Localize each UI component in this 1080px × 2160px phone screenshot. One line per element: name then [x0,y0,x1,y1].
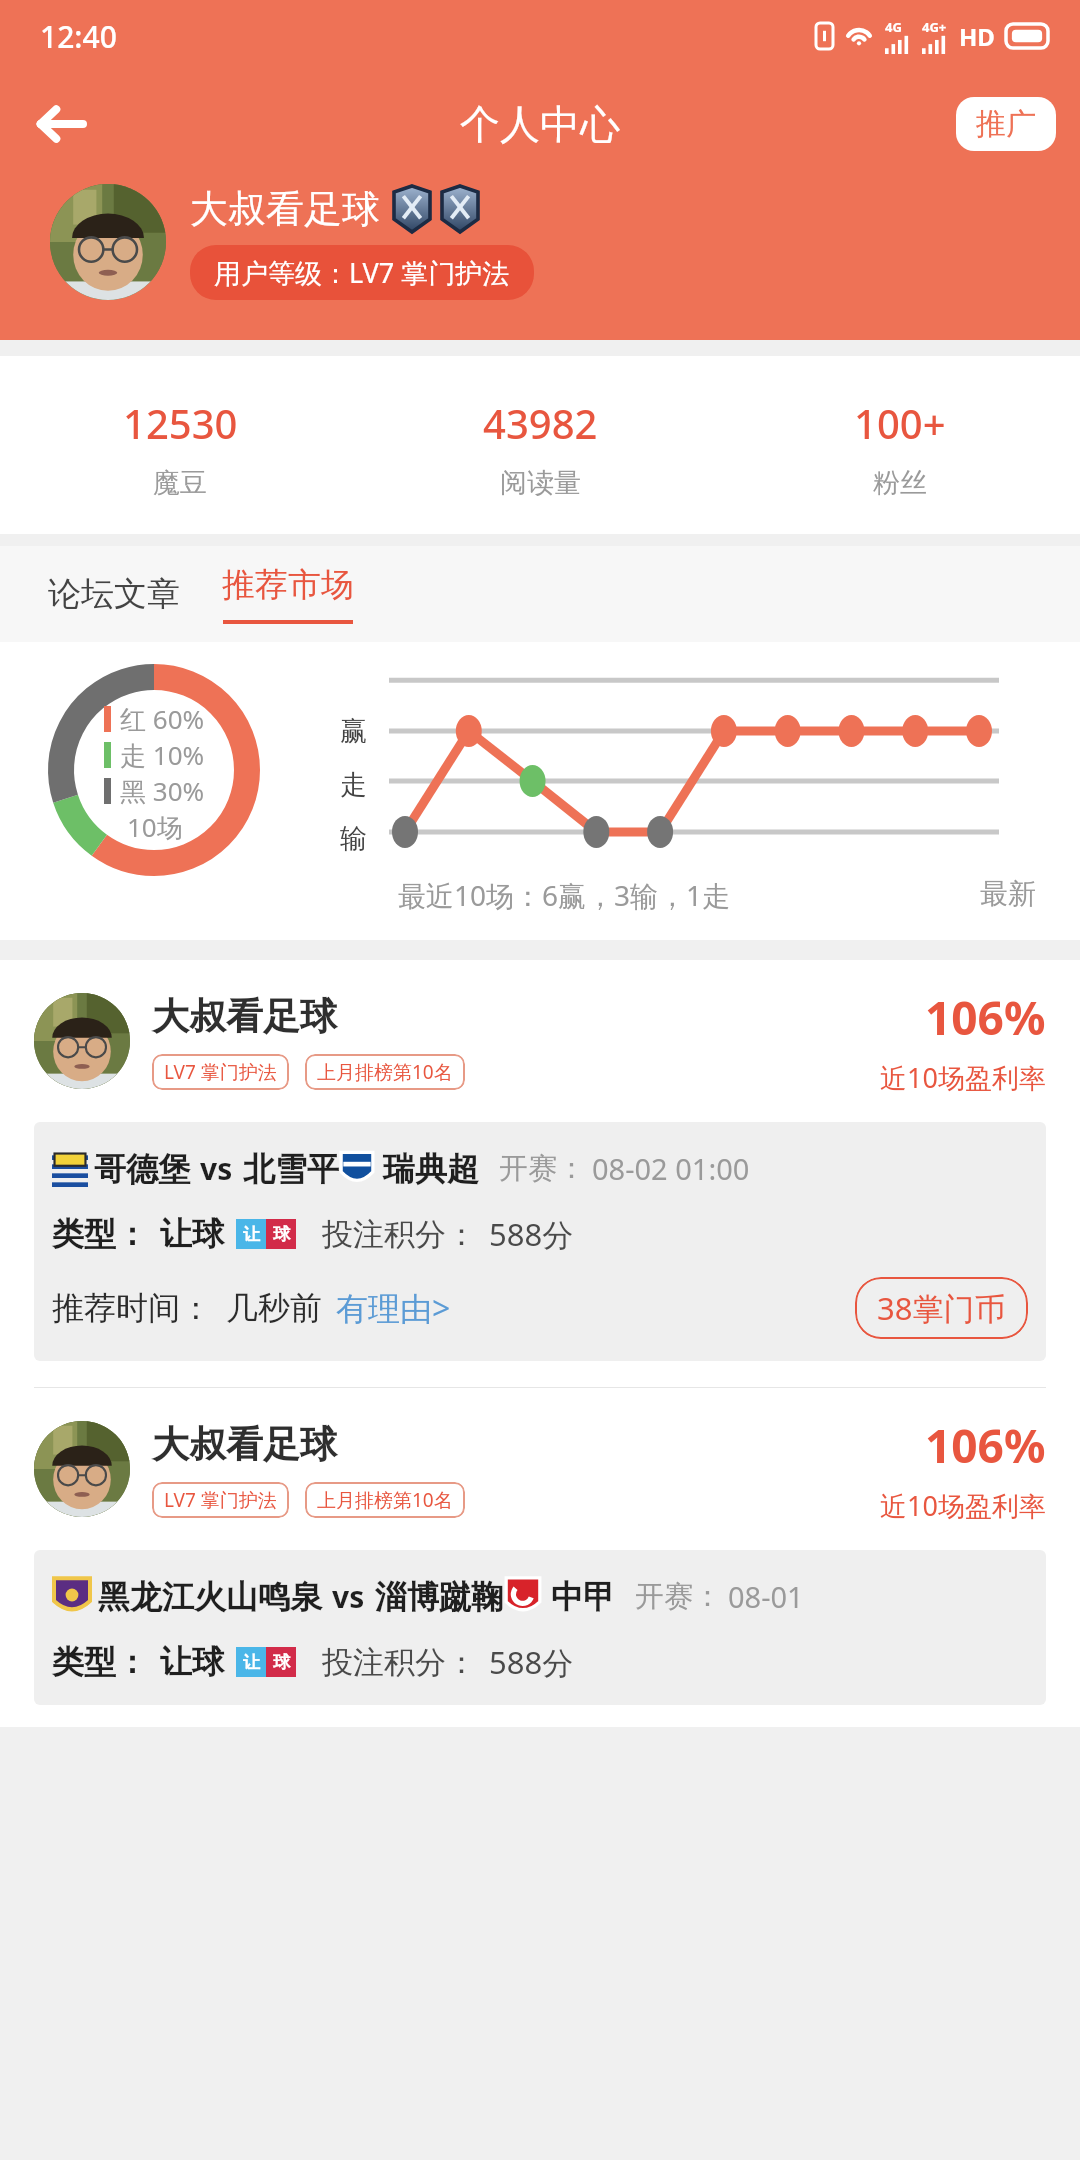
staticText: 瑞典超 [383,1149,479,1189]
staticText: 100+ [854,396,946,450]
staticText: 近10场盈利率 [880,1059,1046,1096]
staticText: 588分 [489,1641,574,1683]
staticText: 大叔看足球 [152,1421,337,1468]
staticText: 上月排榜第10名 [317,1487,453,1513]
staticText: 让 [243,1652,260,1673]
button[interactable]: 43982 [360,396,720,500]
staticText: 让球 [160,1642,224,1682]
staticText: 推荐时间： [52,1288,212,1328]
staticText: 淄博蹴鞠 [375,1577,503,1617]
staticText: 红 60% [120,701,205,737]
staticText: 论坛文章 [48,573,180,615]
staticText: 赢 [340,714,367,748]
staticText: 最近10场：6赢，3输，1走 [398,876,731,914]
staticText: 走 [340,768,367,802]
staticText: 08-01 [728,1577,804,1616]
staticText: 用户等级：LV7 掌门护法 [214,254,510,291]
staticText: 开赛： [499,1150,586,1187]
staticText: 大叔看足球 [190,185,380,233]
staticText: LV7 掌门护法 [164,1059,277,1085]
button[interactable]: 用户等级：LV7 掌门护法 [190,245,534,300]
button[interactable]: 推广 [956,97,1056,151]
button[interactable]: Back [24,88,96,160]
staticText: 黑 30% [120,773,205,809]
staticText: 有理由> [336,1286,451,1330]
staticText: 43982 [483,396,598,450]
staticText: 38掌门币 [877,1287,1006,1329]
staticText: 最新 [980,876,1036,911]
staticText: 4G+ [922,18,947,36]
staticText: 北雪平 [243,1149,339,1189]
button[interactable]: 大叔看足球 [0,960,1080,1387]
button[interactable]: 推荐市场 [218,564,358,624]
staticText: 魔豆 [153,466,207,500]
staticText: 球 [273,1652,290,1673]
staticText: LV7 掌门护法 [164,1487,277,1513]
staticText: 类型： [52,1214,148,1254]
staticText: 开赛： [635,1578,722,1615]
staticText: 10场 [127,809,183,845]
staticText: 走 10% [120,737,205,773]
button[interactable]: 12530 [0,396,360,500]
button[interactable]: 上月排榜第10名 [305,1482,465,1518]
button[interactable]: 100+ [720,396,1080,500]
button[interactable]: 大叔看足球 [0,1387,1080,1727]
staticText: 投注积分： [322,1643,477,1682]
staticText: 上月排榜第10名 [317,1059,453,1085]
button[interactable]: LV7 掌门护法 [152,1482,289,1518]
staticText: 投注积分： [322,1215,477,1254]
staticText: vs [200,1148,233,1189]
staticText: 4G [885,18,902,36]
staticText: 推荐市场 [222,564,354,606]
staticText: 12530 [123,396,238,450]
staticText: 106% [925,1414,1046,1477]
button[interactable]: LV7 掌门护法 [152,1054,289,1090]
staticText: HD [959,20,995,53]
staticText: 黑龙江火山鸣泉 [98,1577,322,1617]
staticText: 让球 [160,1214,224,1254]
button[interactable]: 上月排榜第10名 [305,1054,465,1090]
staticText: 输 [340,822,367,856]
button[interactable]: 论坛文章 [44,555,184,633]
staticText: 哥德堡 [94,1149,190,1189]
staticText: 12:40 [40,16,117,57]
staticText: 08-02 01:00 [592,1149,750,1188]
button[interactable]: 38掌门币 [855,1277,1028,1339]
staticText: 让 [243,1224,260,1245]
button[interactable]: 有理由> [336,1286,451,1330]
staticText: vs [332,1576,365,1617]
staticText: 106% [925,986,1046,1049]
staticText: 阅读量 [500,466,581,500]
staticText: 推广 [976,105,1036,143]
staticText: 几秒前 [226,1288,322,1328]
staticText: 个人中心 [460,99,620,149]
staticText: 粉丝 [873,466,927,500]
staticText: 中甲 [551,1577,615,1617]
staticText: 588分 [489,1213,574,1255]
staticText: 大叔看足球 [152,993,337,1040]
staticText: 类型： [52,1642,148,1682]
staticText: 近10场盈利率 [880,1487,1046,1524]
staticText: 球 [273,1224,290,1245]
